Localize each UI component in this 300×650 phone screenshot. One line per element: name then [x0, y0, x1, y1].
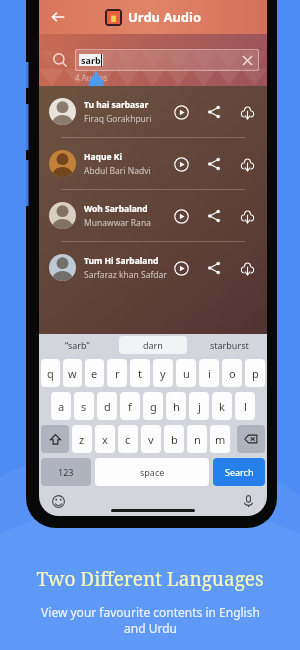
button[interactable]: e [85, 359, 104, 387]
staticText: z [79, 432, 85, 447]
button[interactable]: x [95, 425, 115, 453]
staticText: Woh Sarbaland [84, 203, 148, 215]
button[interactable]: Backspace [237, 425, 265, 453]
button[interactable]: Share [204, 258, 224, 278]
staticText: d [104, 399, 111, 414]
button[interactable]: u [176, 359, 196, 387]
staticText: 4 Audios [75, 72, 108, 83]
button[interactable]: darn [119, 336, 187, 354]
button[interactable]: m [210, 425, 230, 453]
staticText: Tum Hi Sarbaland Ho [84, 255, 167, 267]
staticText: Munawwar Rana [84, 217, 151, 229]
staticText: 123 [58, 466, 74, 478]
staticText: u [183, 366, 190, 381]
staticText: Tu hai sarbasar koi ... [84, 99, 167, 111]
button[interactable]: p [245, 359, 265, 387]
staticText: l [244, 399, 247, 414]
button[interactable]: Tum Hi Sarbaland Ho [39, 242, 267, 293]
staticText: h [173, 399, 180, 414]
button[interactable]: Search [213, 458, 265, 486]
button[interactable]: b [164, 425, 184, 453]
button[interactable]: f [120, 392, 140, 420]
button[interactable]: Play [171, 258, 191, 278]
staticText: View your favourite contents in English … [41, 604, 260, 636]
staticText: s [81, 399, 87, 414]
staticText: Urdu Audio [128, 8, 202, 26]
staticText: space [140, 466, 165, 478]
button[interactable]: Play [171, 154, 191, 174]
staticText: sarb [81, 54, 101, 66]
button[interactable]: l [235, 392, 255, 420]
button[interactable]: 123 [41, 458, 91, 486]
staticText: a [58, 399, 65, 414]
staticText: r [115, 366, 120, 381]
button[interactable]: Tu hai sarbasar koi ... [39, 86, 267, 137]
button[interactable]: Search [47, 47, 73, 73]
staticText: Firaq Gorakhpuri [84, 113, 152, 125]
staticText: x [102, 432, 108, 447]
staticText: darn [143, 339, 163, 351]
button[interactable]: a [51, 392, 71, 420]
button[interactable]: s [74, 392, 94, 420]
staticText: Haque Ki Sarbulandi Ka ... [84, 151, 167, 163]
button[interactable]: Back [45, 4, 71, 30]
button[interactable]: Share [204, 206, 224, 226]
staticText: e [91, 366, 98, 381]
staticText: m [215, 432, 226, 447]
button[interactable]: Share [204, 154, 224, 174]
button[interactable]: o [222, 359, 242, 387]
staticText: o [229, 366, 236, 381]
button[interactable]: v [141, 425, 161, 453]
staticText: starburst [210, 339, 249, 351]
staticText: Sarfaraz khan Safdar [84, 269, 167, 281]
button[interactable]: starburst [195, 336, 263, 354]
staticText: Search [225, 466, 254, 478]
staticText: q [47, 366, 54, 381]
staticText: y [160, 366, 166, 381]
button[interactable]: r [107, 359, 127, 387]
staticText: Abdul Bari Nadvi Bhatkal [84, 165, 167, 177]
button[interactable]: k [212, 392, 232, 420]
staticText: Two Different Languages [36, 566, 264, 592]
button[interactable]: d [97, 392, 117, 420]
staticText: j [198, 399, 201, 414]
button[interactable]: q [41, 359, 60, 387]
button[interactable]: Woh Sarbaland [39, 190, 267, 241]
button[interactable]: Download [237, 154, 257, 174]
button[interactable]: h [166, 392, 186, 420]
button[interactable]: i [199, 359, 219, 387]
button[interactable]: Play [171, 206, 191, 226]
button[interactable]: Download [237, 258, 257, 278]
button[interactable]: sarb [75, 49, 259, 71]
button[interactable]: Play [171, 102, 191, 122]
staticText: c [125, 432, 131, 447]
button[interactable]: g [143, 392, 163, 420]
button[interactable]: space [95, 458, 209, 486]
button[interactable]: z [72, 425, 92, 453]
staticText: v [148, 432, 154, 447]
staticText: p [252, 366, 259, 381]
button[interactable]: j [189, 392, 209, 420]
button[interactable]: Download [237, 102, 257, 122]
staticText: “sarb” [65, 339, 90, 351]
button[interactable]: Shift [41, 425, 69, 453]
button[interactable]: Share [204, 102, 224, 122]
button[interactable]: n [187, 425, 207, 453]
staticText: k [219, 399, 225, 414]
staticText: i [208, 366, 211, 381]
staticText: w [68, 366, 77, 381]
button[interactable]: “sarb” [43, 336, 111, 354]
button[interactable]: Clear [239, 52, 255, 68]
button[interactable]: Haque Ki Sarbulandi Ka ... [39, 138, 267, 189]
staticText: b [171, 432, 178, 447]
button[interactable]: Emoji [49, 492, 67, 510]
button[interactable]: w [63, 359, 82, 387]
button[interactable]: t [130, 359, 150, 387]
staticText: t [138, 366, 142, 381]
button[interactable]: c [118, 425, 138, 453]
button[interactable]: y [153, 359, 173, 387]
staticText: f [128, 399, 132, 414]
staticText: g [150, 399, 157, 414]
button[interactable]: Voice input [239, 492, 257, 510]
button[interactable]: Download [237, 206, 257, 226]
